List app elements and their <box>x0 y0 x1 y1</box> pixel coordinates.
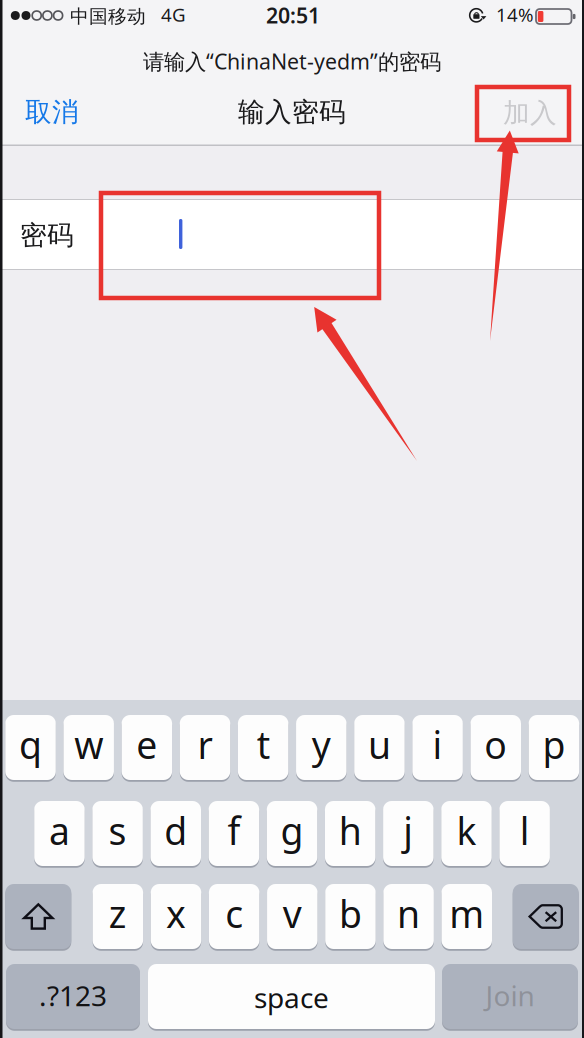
button[interactable]: y <box>296 715 347 782</box>
staticText: 密码 <box>20 219 74 252</box>
staticText: z <box>109 889 127 938</box>
button[interactable]: h <box>325 801 375 868</box>
staticText: f <box>227 806 240 855</box>
staticText: .?123 <box>39 977 107 1014</box>
staticText: b <box>339 889 362 938</box>
staticText: t <box>257 720 270 769</box>
staticText: 输入密码 <box>238 96 346 128</box>
button[interactable]: v <box>267 884 317 951</box>
staticText: x <box>166 889 186 938</box>
staticText: d <box>164 806 187 855</box>
staticText: o <box>484 720 507 769</box>
button[interactable]: w <box>63 715 114 782</box>
staticText: 取消 <box>25 96 79 128</box>
staticText: e <box>136 720 157 769</box>
staticText: m <box>449 889 484 938</box>
staticText: v <box>283 889 302 938</box>
staticText: 4G <box>161 2 186 27</box>
staticText: w <box>74 720 103 769</box>
button[interactable]: k <box>441 801 492 868</box>
staticText: g <box>281 806 304 855</box>
button[interactable]: x <box>151 884 201 951</box>
staticText: y <box>312 720 331 769</box>
button[interactable]: f <box>209 801 259 868</box>
staticText: h <box>339 806 362 855</box>
button[interactable]: i <box>412 715 463 782</box>
staticText: space <box>254 979 329 1016</box>
button[interactable]: d <box>150 801 201 868</box>
button[interactable]: g <box>267 801 317 868</box>
staticText: 14% <box>496 2 534 27</box>
staticText: 请输入“ChinaNet-yedm”的密码 <box>143 47 441 75</box>
button[interactable]: space <box>148 964 435 1031</box>
button[interactable]: 取消 <box>0 78 104 146</box>
button[interactable]: u <box>354 715 405 782</box>
staticText: j <box>403 806 413 855</box>
button[interactable]: o <box>470 715 521 782</box>
staticText: r <box>197 720 212 769</box>
staticText: 中国移动 <box>70 5 146 28</box>
button[interactable]: p <box>529 715 579 782</box>
staticText: q <box>19 720 42 769</box>
staticText: n <box>397 889 420 938</box>
staticText: a <box>49 806 70 855</box>
staticText: p <box>542 720 565 769</box>
staticText: k <box>456 806 476 855</box>
button[interactable]: r <box>180 715 230 782</box>
button[interactable]: Shift <box>5 884 71 951</box>
staticText: s <box>109 806 127 855</box>
button[interactable]: s <box>92 801 143 868</box>
button[interactable]: 加入 <box>478 79 582 147</box>
button[interactable]: a <box>34 801 85 868</box>
button[interactable]: b <box>325 884 376 951</box>
button[interactable]: j <box>383 801 434 868</box>
button[interactable]: n <box>383 884 434 951</box>
button[interactable]: 密码 <box>0 200 584 269</box>
button[interactable]: t <box>238 715 288 782</box>
staticText: 加入 <box>503 97 557 129</box>
staticText: u <box>368 720 391 769</box>
button[interactable]: q <box>5 715 56 782</box>
button[interactable]: Join <box>442 964 578 1031</box>
staticText: c <box>225 889 243 938</box>
button[interactable]: .?123 <box>6 964 140 1031</box>
button[interactable]: l <box>499 801 550 868</box>
staticText: l <box>520 806 530 855</box>
button[interactable]: z <box>93 884 143 951</box>
staticText: i <box>433 720 443 769</box>
button[interactable]: e <box>122 715 172 782</box>
button[interactable]: m <box>441 884 492 951</box>
button[interactable]: Delete <box>513 884 579 951</box>
button[interactable]: c <box>209 884 259 951</box>
staticText: Join <box>485 977 534 1014</box>
staticText: 20:51 <box>266 1 320 29</box>
